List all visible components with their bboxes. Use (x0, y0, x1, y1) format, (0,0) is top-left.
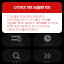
staticText: Controls (10, 43, 22, 46)
staticText: History (43, 43, 52, 46)
staticText: This app requires a device running iOS 1… (7, 15, 57, 31)
staticText: Search (11, 61, 21, 64)
button[interactable]: History (33, 34, 62, 47)
button[interactable]: More (33, 49, 62, 62)
staticText: More (44, 60, 51, 64)
button[interactable]: Controls (2, 34, 31, 47)
staticText: Device not supported (14, 5, 50, 10)
button[interactable]: Search (2, 49, 31, 62)
